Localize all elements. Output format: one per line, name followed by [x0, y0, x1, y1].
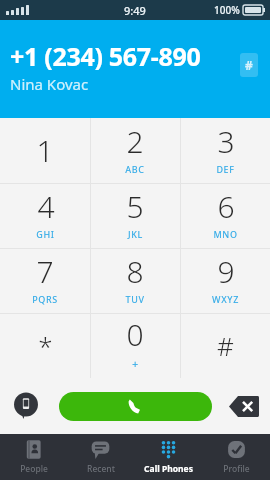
staticText: MNO	[213, 228, 238, 240]
button[interactable]: Keypad	[240, 53, 258, 77]
staticText: 9:49	[124, 3, 146, 18]
button[interactable]: Recent	[67, 434, 134, 480]
staticText: PQRS	[32, 293, 58, 305]
staticText: Call Phones	[144, 463, 193, 475]
button[interactable]: Call Phones	[134, 434, 202, 480]
staticText: 100%	[214, 3, 240, 17]
button[interactable]: 3	[180, 118, 270, 183]
button[interactable]: *	[0, 313, 90, 378]
staticText: 7	[36, 251, 54, 292]
staticText: +1 (234) 567-890	[10, 39, 201, 73]
staticText: Profile	[223, 463, 250, 475]
staticText: WXYZ	[212, 293, 239, 305]
staticText: GHI	[36, 228, 55, 240]
button[interactable]: 0	[90, 313, 180, 378]
button[interactable]: People	[0, 434, 67, 480]
staticText: #	[245, 57, 253, 73]
staticText: 3	[217, 121, 235, 162]
button[interactable]: 8	[90, 248, 180, 313]
button[interactable]: Backspace	[229, 396, 259, 417]
staticText: Nina Kovac	[10, 74, 89, 94]
staticText: *	[38, 328, 53, 363]
staticText: 4	[37, 186, 55, 227]
button[interactable]: 6	[180, 183, 270, 248]
staticText: 6	[217, 186, 235, 227]
staticText: TUV	[125, 293, 145, 305]
staticText: JKL	[128, 228, 143, 240]
button[interactable]: 5	[90, 183, 180, 248]
staticText: DEF	[216, 163, 235, 175]
staticText: +	[132, 356, 139, 371]
staticText: 1	[36, 130, 54, 171]
button[interactable]: Send message	[13, 393, 39, 419]
staticText: People	[20, 463, 48, 475]
button[interactable]: 2	[90, 118, 180, 183]
button[interactable]: Call	[59, 392, 212, 421]
button[interactable]: #	[180, 313, 270, 378]
button[interactable]: 4	[0, 183, 90, 248]
staticText: ABC	[125, 163, 145, 175]
staticText: 0	[126, 314, 144, 355]
button[interactable]: 7	[0, 248, 90, 313]
button[interactable]: 9	[180, 248, 270, 313]
staticText: 9	[217, 251, 235, 292]
staticText: Recent	[87, 463, 115, 475]
staticText: 2	[126, 121, 144, 162]
staticText: #	[217, 328, 234, 363]
button[interactable]: 1	[0, 118, 90, 183]
button[interactable]: Profile	[202, 434, 270, 480]
staticText: 8	[126, 251, 144, 292]
staticText: 5	[126, 186, 144, 227]
